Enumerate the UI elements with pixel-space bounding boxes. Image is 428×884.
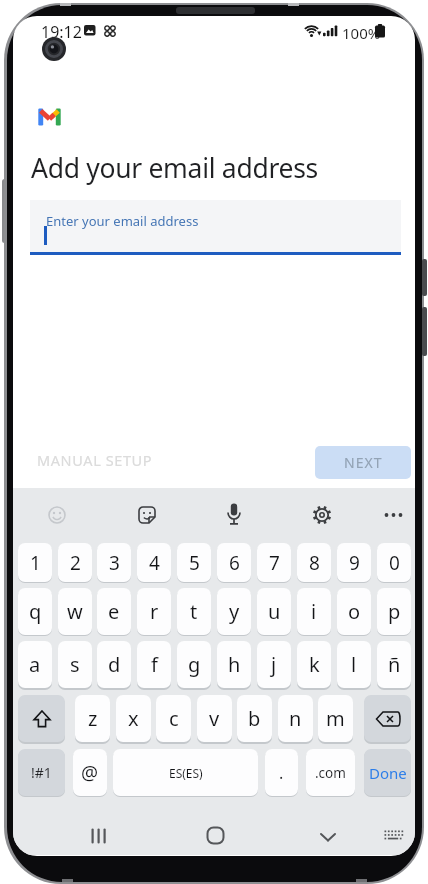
button[interactable]	[312, 505, 332, 525]
staticText: 19:12	[41, 21, 82, 43]
button[interactable]: 0	[377, 543, 411, 582]
staticText: ñ	[388, 651, 401, 678]
button[interactable]: t	[177, 588, 211, 635]
staticText: 5	[189, 550, 200, 576]
button[interactable]: g	[177, 641, 211, 688]
button[interactable]: m	[318, 695, 353, 742]
button[interactable]	[384, 830, 403, 843]
staticText: f	[151, 651, 158, 678]
staticText: v	[209, 705, 220, 732]
staticText: z	[88, 705, 98, 732]
button[interactable]: @	[73, 749, 107, 796]
staticText: 100%	[342, 23, 381, 43]
staticText: 4	[149, 550, 160, 576]
staticText: MANUAL SETUP	[37, 450, 153, 470]
staticText: 6	[229, 550, 240, 576]
button[interactable]: p	[377, 588, 411, 635]
button[interactable]: 7	[257, 543, 291, 582]
staticText: s	[70, 651, 80, 678]
button[interactable]: u	[257, 588, 291, 635]
staticText: 2	[70, 550, 81, 576]
button[interactable]: w	[58, 588, 92, 635]
button[interactable]: 3	[97, 543, 131, 582]
button[interactable]	[225, 503, 243, 526]
staticText: 3	[109, 550, 120, 576]
staticText: Enter your email address	[46, 212, 199, 230]
button[interactable]: k	[297, 641, 331, 688]
staticText: w	[67, 598, 83, 625]
button[interactable]: e	[97, 588, 131, 635]
button[interactable]	[137, 505, 157, 525]
staticText: Done	[369, 763, 407, 783]
staticText: y	[229, 598, 240, 625]
staticText: c	[169, 705, 179, 732]
staticText: r	[150, 598, 159, 625]
button[interactable]: 1	[18, 543, 52, 582]
button[interactable]: .	[265, 749, 298, 796]
button[interactable]	[18, 695, 65, 742]
button[interactable]: b	[237, 695, 272, 742]
button[interactable]: c	[156, 695, 191, 742]
button[interactable]	[364, 695, 411, 742]
button[interactable]: 4	[137, 543, 171, 582]
staticText: 8	[309, 550, 320, 576]
button[interactable]: n	[278, 695, 313, 742]
button[interactable]: o	[337, 588, 371, 635]
staticText: @	[81, 760, 99, 786]
button[interactable]: Done	[364, 749, 411, 796]
staticText: n	[289, 705, 302, 732]
staticText: t	[190, 598, 198, 625]
button[interactable]: s	[58, 641, 92, 688]
button[interactable]: h	[217, 641, 251, 688]
button[interactable]	[47, 505, 67, 525]
button[interactable]: MANUAL SETUP	[31, 446, 159, 474]
staticText: ES(ES)	[169, 765, 203, 781]
button[interactable]: 2	[58, 543, 92, 582]
button[interactable]: f	[137, 641, 171, 688]
button[interactable]: x	[116, 695, 151, 742]
button[interactable]: i	[297, 588, 331, 635]
staticText: 7	[269, 550, 280, 576]
button[interactable]	[382, 508, 405, 522]
staticText: e	[108, 598, 120, 625]
staticText: a	[29, 651, 41, 678]
staticText: 1	[30, 550, 41, 576]
button[interactable]: NEXT	[315, 446, 411, 479]
staticText: i	[311, 598, 317, 625]
button[interactable]: z	[75, 695, 110, 742]
button[interactable]: d	[97, 641, 131, 688]
staticText: 0	[389, 550, 400, 576]
staticText: Add your email address	[31, 150, 318, 186]
button[interactable]: 5	[177, 543, 211, 582]
staticText: d	[108, 651, 121, 678]
button[interactable]: v	[197, 695, 232, 742]
button[interactable]	[30, 200, 401, 252]
button[interactable]: j	[257, 641, 291, 688]
button[interactable]: q	[18, 588, 52, 635]
staticText: p	[388, 598, 401, 625]
staticText: x	[128, 705, 139, 732]
button[interactable]	[206, 826, 225, 845]
staticText: o	[348, 598, 361, 625]
button[interactable]: l	[337, 641, 371, 688]
button[interactable]	[90, 827, 107, 845]
staticText: NEXT	[344, 453, 383, 472]
button[interactable]: 8	[297, 543, 331, 582]
button[interactable]: y	[217, 588, 251, 635]
button[interactable]: ñ	[377, 641, 411, 688]
button[interactable]: .com	[306, 749, 355, 796]
button[interactable]	[319, 831, 337, 843]
button[interactable]: 9	[337, 543, 371, 582]
staticText: g	[188, 651, 201, 678]
button[interactable]: a	[18, 641, 52, 688]
button[interactable]: !#1	[18, 749, 65, 796]
button[interactable]: ES(ES)	[113, 749, 258, 796]
staticText: b	[248, 705, 261, 732]
button[interactable]: r	[137, 588, 171, 635]
button[interactable]: 6	[217, 543, 251, 582]
staticText: h	[228, 651, 241, 678]
staticText: j	[271, 651, 277, 678]
staticText: .	[279, 762, 284, 784]
staticText: k	[309, 651, 320, 678]
staticText: .com	[315, 764, 346, 782]
